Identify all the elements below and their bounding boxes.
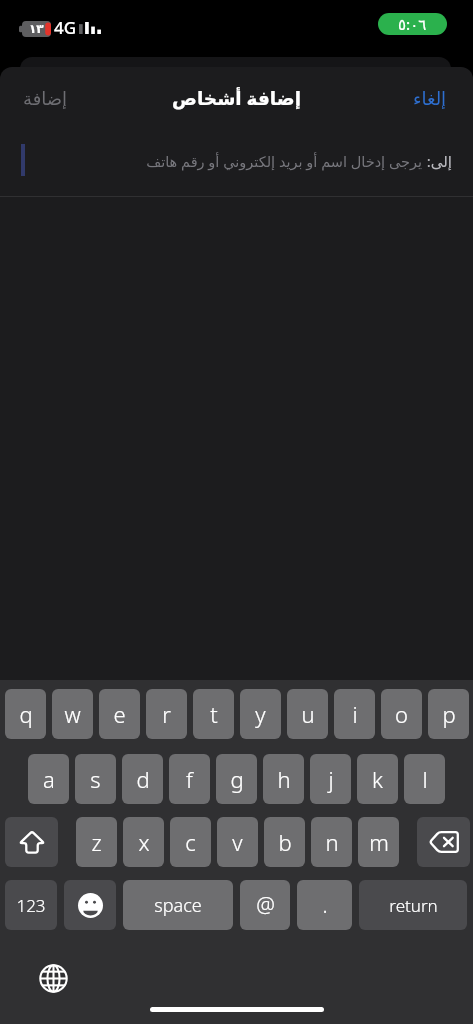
- staticText: g: [230, 764, 244, 794]
- staticText: return: [389, 894, 438, 917]
- staticText: u: [301, 699, 315, 729]
- button[interactable]: إضافة: [0, 74, 90, 123]
- button[interactable]: i: [334, 689, 375, 739]
- staticText: ٥:٠٦: [398, 14, 427, 34]
- button[interactable]: @: [240, 880, 290, 930]
- staticText: p: [442, 699, 456, 729]
- button[interactable]: Shift: [5, 817, 58, 867]
- staticText: @: [256, 891, 275, 920]
- button[interactable]: s: [75, 754, 116, 804]
- button[interactable]: إلغاء: [391, 74, 473, 123]
- button[interactable]: a: [28, 754, 69, 804]
- button[interactable]: c: [170, 817, 211, 867]
- staticText: i: [352, 699, 358, 729]
- staticText: o: [395, 699, 408, 729]
- staticText: e: [113, 699, 126, 729]
- staticText: z: [91, 827, 102, 857]
- button[interactable]: f: [169, 754, 210, 804]
- staticText: f: [186, 764, 193, 794]
- staticText: r: [162, 699, 171, 729]
- button[interactable]: 123: [5, 880, 57, 930]
- button[interactable]: k: [357, 754, 398, 804]
- staticText: 123: [16, 894, 46, 917]
- button[interactable]: d: [122, 754, 163, 804]
- button[interactable]: r: [146, 689, 187, 739]
- button[interactable]: m: [358, 817, 399, 867]
- staticText: w: [64, 699, 81, 729]
- staticText: h: [277, 764, 291, 794]
- button[interactable]: q: [5, 689, 46, 739]
- button[interactable]: h: [263, 754, 304, 804]
- staticText: y: [255, 699, 266, 729]
- button[interactable]: v: [217, 817, 258, 867]
- staticText: v: [232, 827, 243, 857]
- button[interactable]: Change keyboard: [38, 963, 68, 993]
- staticText: يرجى إدخال اسم أو بريد إلكتروني أو رقم ه…: [146, 151, 422, 171]
- staticText: l: [422, 764, 428, 794]
- staticText: إضافة: [23, 88, 68, 109]
- button[interactable]: Backspace: [417, 817, 470, 867]
- staticText: إضافة أشخاص: [172, 85, 302, 110]
- staticText: b: [278, 827, 292, 857]
- staticText: t: [210, 699, 218, 729]
- staticText: j: [328, 764, 334, 794]
- staticText: k: [372, 764, 383, 794]
- staticText: q: [19, 699, 33, 729]
- button[interactable]: z: [76, 817, 117, 867]
- staticText: إلى:: [426, 151, 452, 171]
- staticText: n: [325, 827, 339, 857]
- staticText: s: [90, 764, 101, 794]
- button[interactable]: x: [123, 817, 164, 867]
- button[interactable]: return: [359, 880, 467, 930]
- button[interactable]: p: [428, 689, 469, 739]
- staticText: إلغاء: [413, 88, 447, 109]
- button[interactable]: w: [52, 689, 93, 739]
- button[interactable]: n: [311, 817, 352, 867]
- button[interactable]: y: [240, 689, 281, 739]
- button[interactable]: Emoji: [64, 880, 116, 930]
- button[interactable]: إلى:: [0, 129, 473, 197]
- staticText: d: [136, 764, 150, 794]
- staticText: c: [185, 827, 196, 857]
- staticText: m: [369, 827, 389, 857]
- staticText: x: [138, 827, 150, 857]
- staticText: ١٣: [29, 22, 44, 36]
- staticText: 4G: [54, 16, 77, 39]
- button[interactable]: .: [297, 880, 352, 930]
- button[interactable]: t: [193, 689, 234, 739]
- button[interactable]: b: [264, 817, 305, 867]
- button[interactable]: j: [310, 754, 351, 804]
- button[interactable]: l: [404, 754, 445, 804]
- staticText: space: [154, 893, 202, 918]
- button[interactable]: g: [216, 754, 257, 804]
- staticText: a: [43, 764, 55, 794]
- button[interactable]: e: [99, 689, 140, 739]
- staticText: .: [322, 891, 328, 920]
- button[interactable]: space: [123, 880, 233, 930]
- button[interactable]: u: [287, 689, 328, 739]
- button[interactable]: o: [381, 689, 422, 739]
